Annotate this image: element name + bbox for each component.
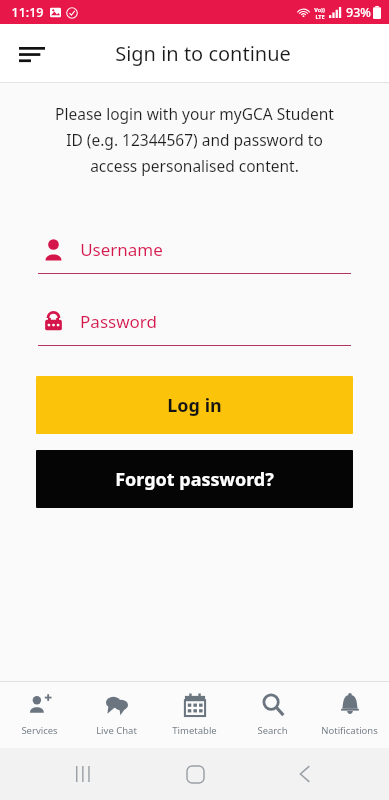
staticText: Please login with your myGCA Student (55, 103, 334, 124)
button[interactable]: Services (1, 682, 78, 748)
staticText: Username (80, 238, 163, 261)
staticText: Password (80, 310, 157, 333)
staticText: 93% (346, 4, 371, 21)
button[interactable]: Password (38, 308, 351, 346)
button[interactable]: Back (279, 748, 331, 800)
button[interactable]: Notifications (311, 682, 388, 748)
staticText: LTE (315, 13, 325, 20)
button[interactable]: Forgot password? (36, 450, 353, 508)
staticText: 11:19 (11, 4, 44, 21)
staticText: Timetable (172, 724, 217, 737)
button[interactable]: Timetable (156, 682, 233, 748)
staticText: Notifications (321, 724, 378, 737)
button[interactable]: Home (169, 748, 221, 800)
button[interactable]: Username (38, 236, 351, 274)
button[interactable]: Search (234, 682, 311, 748)
staticText: Log in (167, 393, 222, 418)
staticText: Services (21, 724, 58, 737)
staticText: Live Chat (96, 724, 137, 737)
button[interactable]: Log in (36, 376, 353, 434)
staticText: Vo)) (314, 6, 325, 13)
button[interactable]: Open navigation menu (8, 29, 56, 77)
button[interactable]: Recent apps (58, 748, 110, 800)
staticText: Sign in to continue (115, 40, 291, 67)
button[interactable]: Live Chat (78, 682, 155, 748)
staticText: Search (257, 724, 288, 737)
staticText: Forgot password? (115, 467, 274, 492)
staticText: ID (e.g. 12344567) and password to (66, 129, 323, 150)
staticText: access personalised content. (90, 155, 299, 176)
